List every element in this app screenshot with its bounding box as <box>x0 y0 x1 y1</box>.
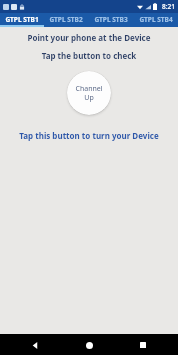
staticText: GTPL STB2 <box>49 15 83 24</box>
staticText: Point your phone at the Device <box>0 32 178 43</box>
button[interactable]: Back <box>26 336 44 354</box>
staticText: GTPL STB4 <box>139 15 173 24</box>
staticText: Tap the button to check <box>0 50 178 61</box>
button[interactable]: Recents <box>134 336 152 354</box>
staticText: GTPL STB3 <box>94 15 128 24</box>
button[interactable]: Tap this button to turn your Device <box>0 130 178 141</box>
staticText: 8:21 <box>162 2 175 11</box>
button[interactable]: Channel Up <box>67 71 111 115</box>
button[interactable]: GTPL STB2 <box>44 13 88 25</box>
button[interactable]: GTPL STB1 <box>0 13 44 25</box>
staticText: Channel Up <box>75 84 103 102</box>
button[interactable]: GTPL STB3 <box>88 13 133 25</box>
staticText: GTPL STB1 <box>5 15 39 24</box>
button[interactable]: Home <box>80 336 98 354</box>
staticText: Tap this button to turn your Device <box>19 130 159 141</box>
button[interactable]: GTPL STB4 <box>133 13 178 25</box>
